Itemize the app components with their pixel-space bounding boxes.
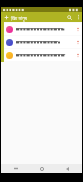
button[interactable]: More options	[74, 12, 82, 22]
button[interactable]: Home	[32, 164, 52, 173]
button[interactable]: Back	[57, 164, 77, 173]
staticText: প্রিয় মানুষ	[11, 14, 27, 21]
button[interactable]: Add	[1, 12, 11, 22]
button[interactable]	[4, 36, 81, 48]
button[interactable]: Search	[65, 12, 74, 22]
button[interactable]: Recent apps	[6, 164, 26, 173]
button[interactable]	[4, 49, 81, 61]
button[interactable]	[4, 23, 81, 35]
